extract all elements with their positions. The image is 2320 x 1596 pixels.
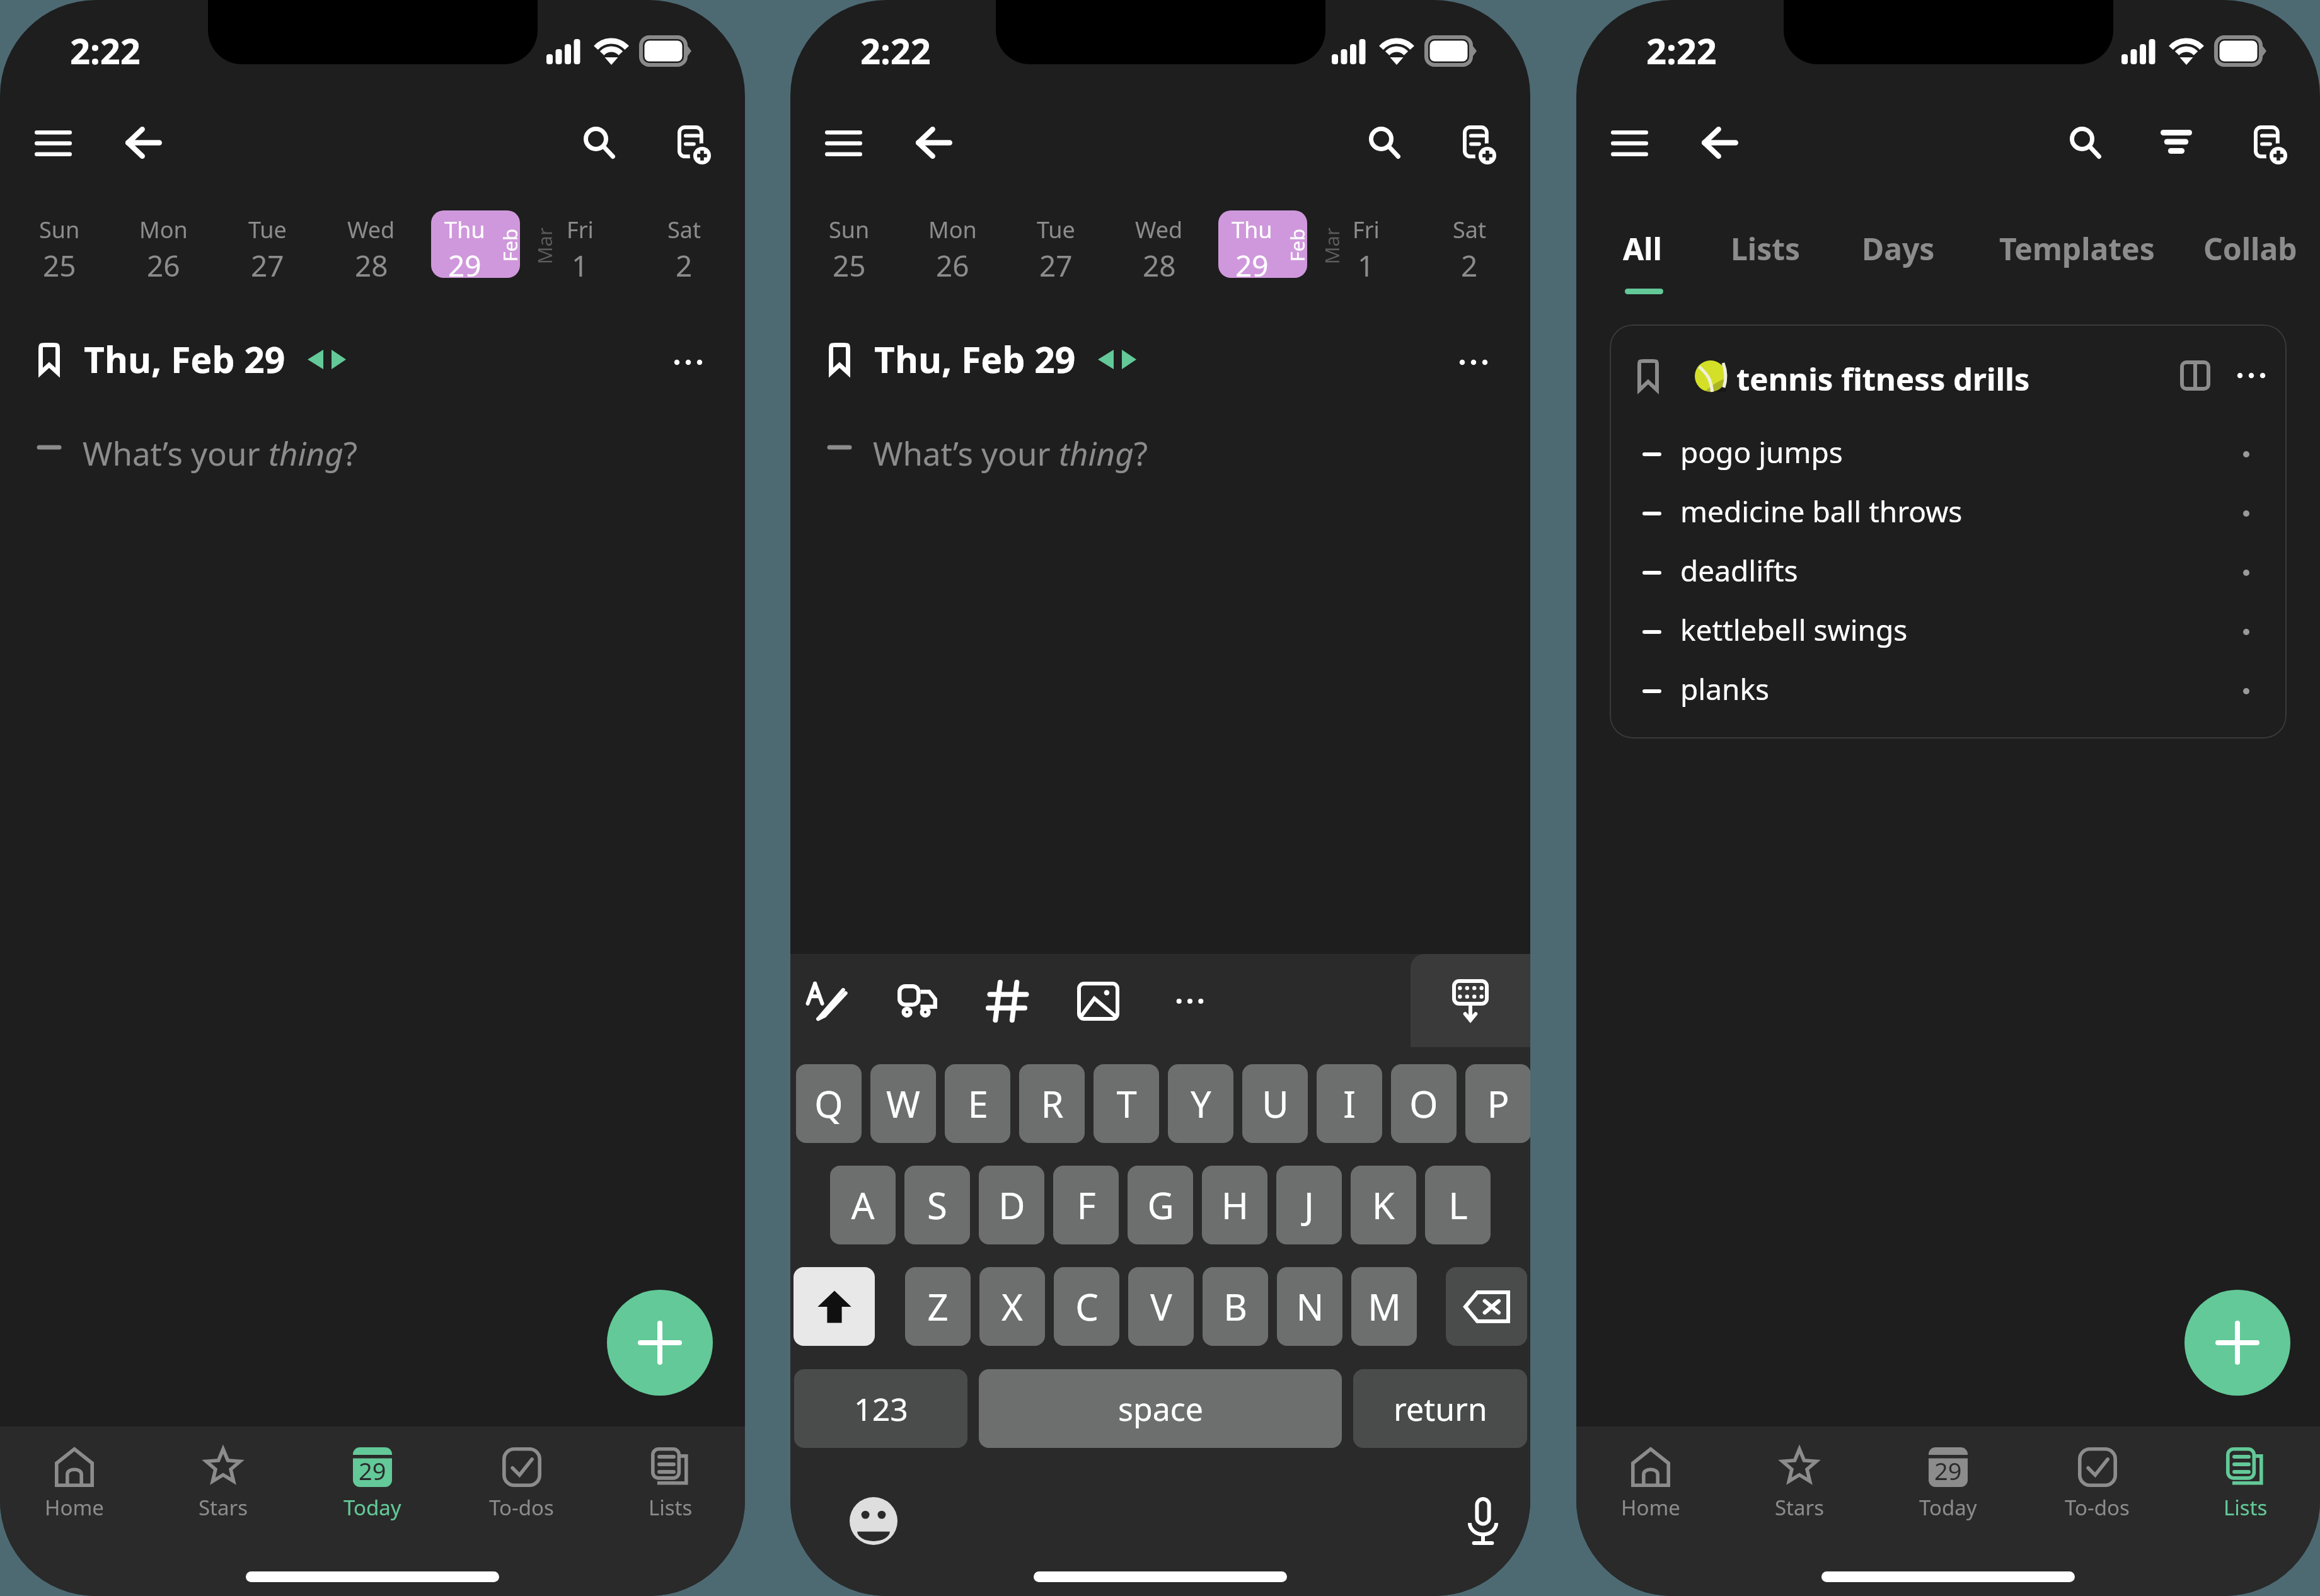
button[interactable]: Bookmark (25, 334, 73, 384)
button[interactable]: Home (1576, 1427, 1725, 1540)
button[interactable]: To-dos (2023, 1427, 2171, 1540)
button[interactable]: W (870, 1064, 936, 1143)
button[interactable]: J (1276, 1166, 1342, 1244)
button[interactable]: Add (607, 1290, 713, 1396)
button[interactable]: Fri (1327, 203, 1405, 281)
button[interactable]: To-dos (447, 1427, 596, 1540)
button[interactable]: Attachment (882, 960, 952, 1043)
button[interactable]: Menu (815, 114, 872, 172)
button[interactable]: Previous day (291, 336, 340, 386)
button[interactable]: C (1054, 1267, 1119, 1346)
button[interactable]: Hide keyboard (1411, 954, 1530, 1047)
button[interactable]: Tue (228, 203, 306, 281)
button[interactable]: M (1351, 1267, 1417, 1346)
button[interactable]: Tue (1017, 203, 1095, 281)
button[interactable]: Filter (2148, 113, 2205, 171)
button[interactable]: Thu, Feb 29 (84, 335, 286, 384)
button[interactable]: Lists (1722, 219, 1809, 278)
button[interactable]: Previous day (1082, 336, 1131, 386)
button[interactable]: Menu (25, 114, 81, 172)
button[interactable]: deadlifts (1610, 543, 2287, 602)
button[interactable]: Backspace (1446, 1267, 1527, 1346)
button[interactable]: Collab (2195, 219, 2306, 278)
button[interactable]: More options (2224, 348, 2278, 403)
button[interactable]: Y (1168, 1064, 1233, 1143)
button[interactable]: Back (115, 113, 172, 171)
button[interactable]: A (830, 1166, 896, 1244)
button[interactable]: 123 (794, 1369, 967, 1448)
button[interactable]: Bookmark (1625, 347, 1671, 404)
button[interactable]: Image (1064, 960, 1133, 1043)
button[interactable]: Sat (645, 203, 723, 281)
button[interactable]: New note (1452, 114, 1508, 176)
button[interactable]: 29 (298, 1427, 447, 1540)
button[interactable]: T (1094, 1064, 1159, 1143)
button[interactable]: P (1465, 1064, 1530, 1143)
button[interactable]: Days (1853, 219, 1944, 278)
button[interactable]: Thu (431, 210, 520, 278)
button[interactable]: Next day (315, 336, 364, 386)
button[interactable]: Split view (2168, 348, 2222, 403)
button[interactable]: Mon (124, 203, 202, 281)
button[interactable]: More (1160, 960, 1220, 1043)
button[interactable]: Z (905, 1267, 971, 1346)
button[interactable]: B (1203, 1267, 1268, 1346)
button[interactable]: R (1019, 1064, 1085, 1143)
button[interactable]: More options (657, 334, 720, 391)
button[interactable]: Add (2184, 1290, 2290, 1396)
button[interactable]: Wed (1120, 203, 1198, 281)
button[interactable]: I (1317, 1064, 1382, 1143)
button[interactable]: Menu (1601, 114, 1658, 172)
button[interactable]: Back (906, 113, 962, 171)
button[interactable]: Format (791, 960, 862, 1043)
button[interactable]: Mon (913, 203, 991, 281)
button[interactable]: Sun (810, 203, 888, 281)
button[interactable]: pogo jumps (1610, 425, 2287, 484)
button[interactable]: O (1391, 1064, 1457, 1143)
button[interactable]: Sun (20, 203, 98, 281)
button[interactable]: N (1277, 1267, 1342, 1346)
button[interactable]: Bookmark (816, 334, 863, 384)
button[interactable]: space (979, 1369, 1342, 1448)
button[interactable]: U (1242, 1064, 1308, 1143)
button[interactable]: Q (796, 1064, 862, 1143)
button[interactable]: Lists (2171, 1427, 2320, 1540)
button[interactable]: V (1128, 1267, 1194, 1346)
button[interactable]: Bookmark (1610, 324, 2287, 738)
button[interactable]: Templates (1990, 219, 2164, 278)
button[interactable]: All (1614, 219, 1671, 278)
button[interactable]: New note (667, 114, 722, 176)
button[interactable]: F (1053, 1166, 1119, 1244)
button[interactable]: Thu, Feb 29 (874, 335, 1076, 384)
button[interactable]: Next day (1105, 336, 1155, 386)
button[interactable]: X (979, 1267, 1045, 1346)
button[interactable]: Sat (1430, 203, 1508, 281)
button[interactable]: Fri (541, 203, 619, 281)
button[interactable]: D (979, 1166, 1044, 1244)
button[interactable]: kettlebell swings (1610, 602, 2287, 662)
button[interactable]: Emoji (848, 1495, 899, 1547)
button[interactable]: medicine ball throws (1610, 484, 2287, 543)
button[interactable]: L (1425, 1166, 1491, 1244)
button[interactable]: Stars (1725, 1427, 1874, 1540)
button[interactable]: Dictate (1460, 1491, 1506, 1551)
button[interactable]: More options (1442, 334, 1505, 391)
button[interactable]: Search (571, 113, 628, 171)
button[interactable]: Tag (973, 960, 1043, 1043)
button[interactable]: Home (0, 1427, 149, 1540)
button[interactable]: Wed (332, 203, 410, 281)
button[interactable]: G (1128, 1166, 1193, 1244)
button[interactable]: Back (1692, 113, 1748, 171)
button[interactable]: planks (1610, 662, 2287, 721)
button[interactable]: E (945, 1064, 1010, 1143)
button[interactable]: Lists (596, 1427, 745, 1540)
button[interactable]: S (904, 1166, 970, 1244)
button[interactable]: K (1351, 1166, 1416, 1244)
button[interactable]: Shift (794, 1267, 875, 1346)
button[interactable]: 29 (1874, 1427, 2023, 1540)
button[interactable]: return (1353, 1369, 1527, 1448)
button[interactable]: Search (1356, 113, 1413, 171)
button[interactable]: Stars (149, 1427, 297, 1540)
button[interactable]: H (1202, 1166, 1267, 1244)
button[interactable]: Search (2057, 113, 2114, 171)
